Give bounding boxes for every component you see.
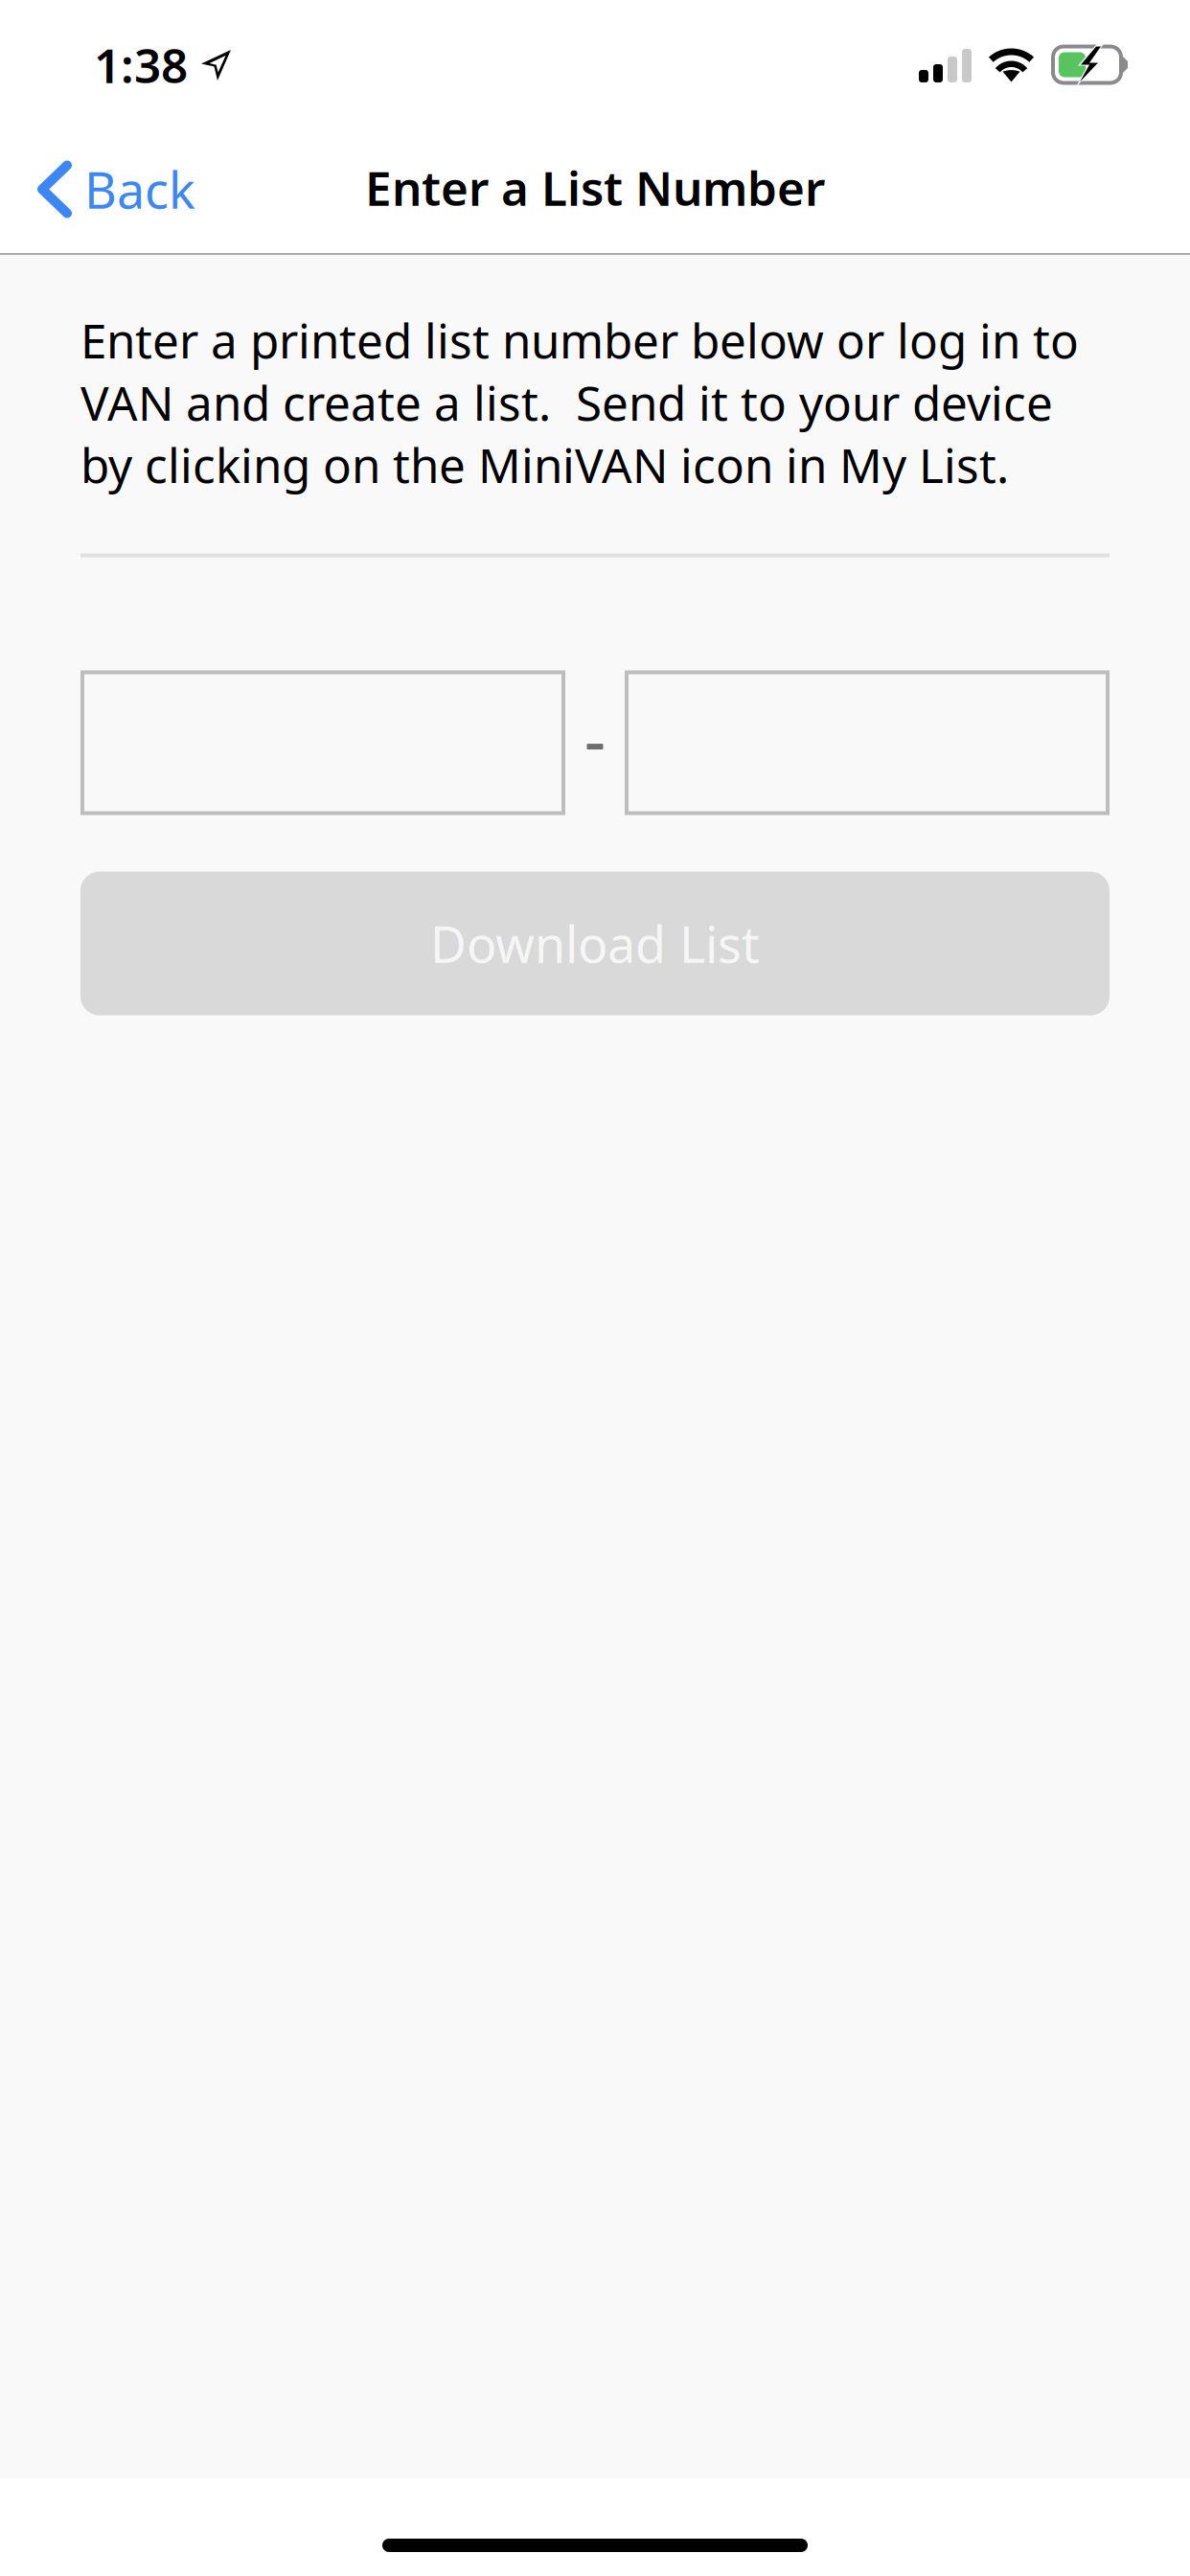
button[interactable]: List number suffix (625, 670, 1110, 815)
staticText: Back (84, 156, 195, 222)
staticText: Download List (430, 910, 760, 977)
staticText: Enter a List Number (365, 156, 825, 219)
button[interactable]: List number prefix (80, 670, 565, 815)
staticText: 1:38 (94, 33, 188, 96)
staticText: Enter a printed list number below or log… (80, 309, 1079, 496)
button[interactable]: Download List (80, 872, 1110, 1015)
button[interactable]: Back (0, 129, 218, 255)
